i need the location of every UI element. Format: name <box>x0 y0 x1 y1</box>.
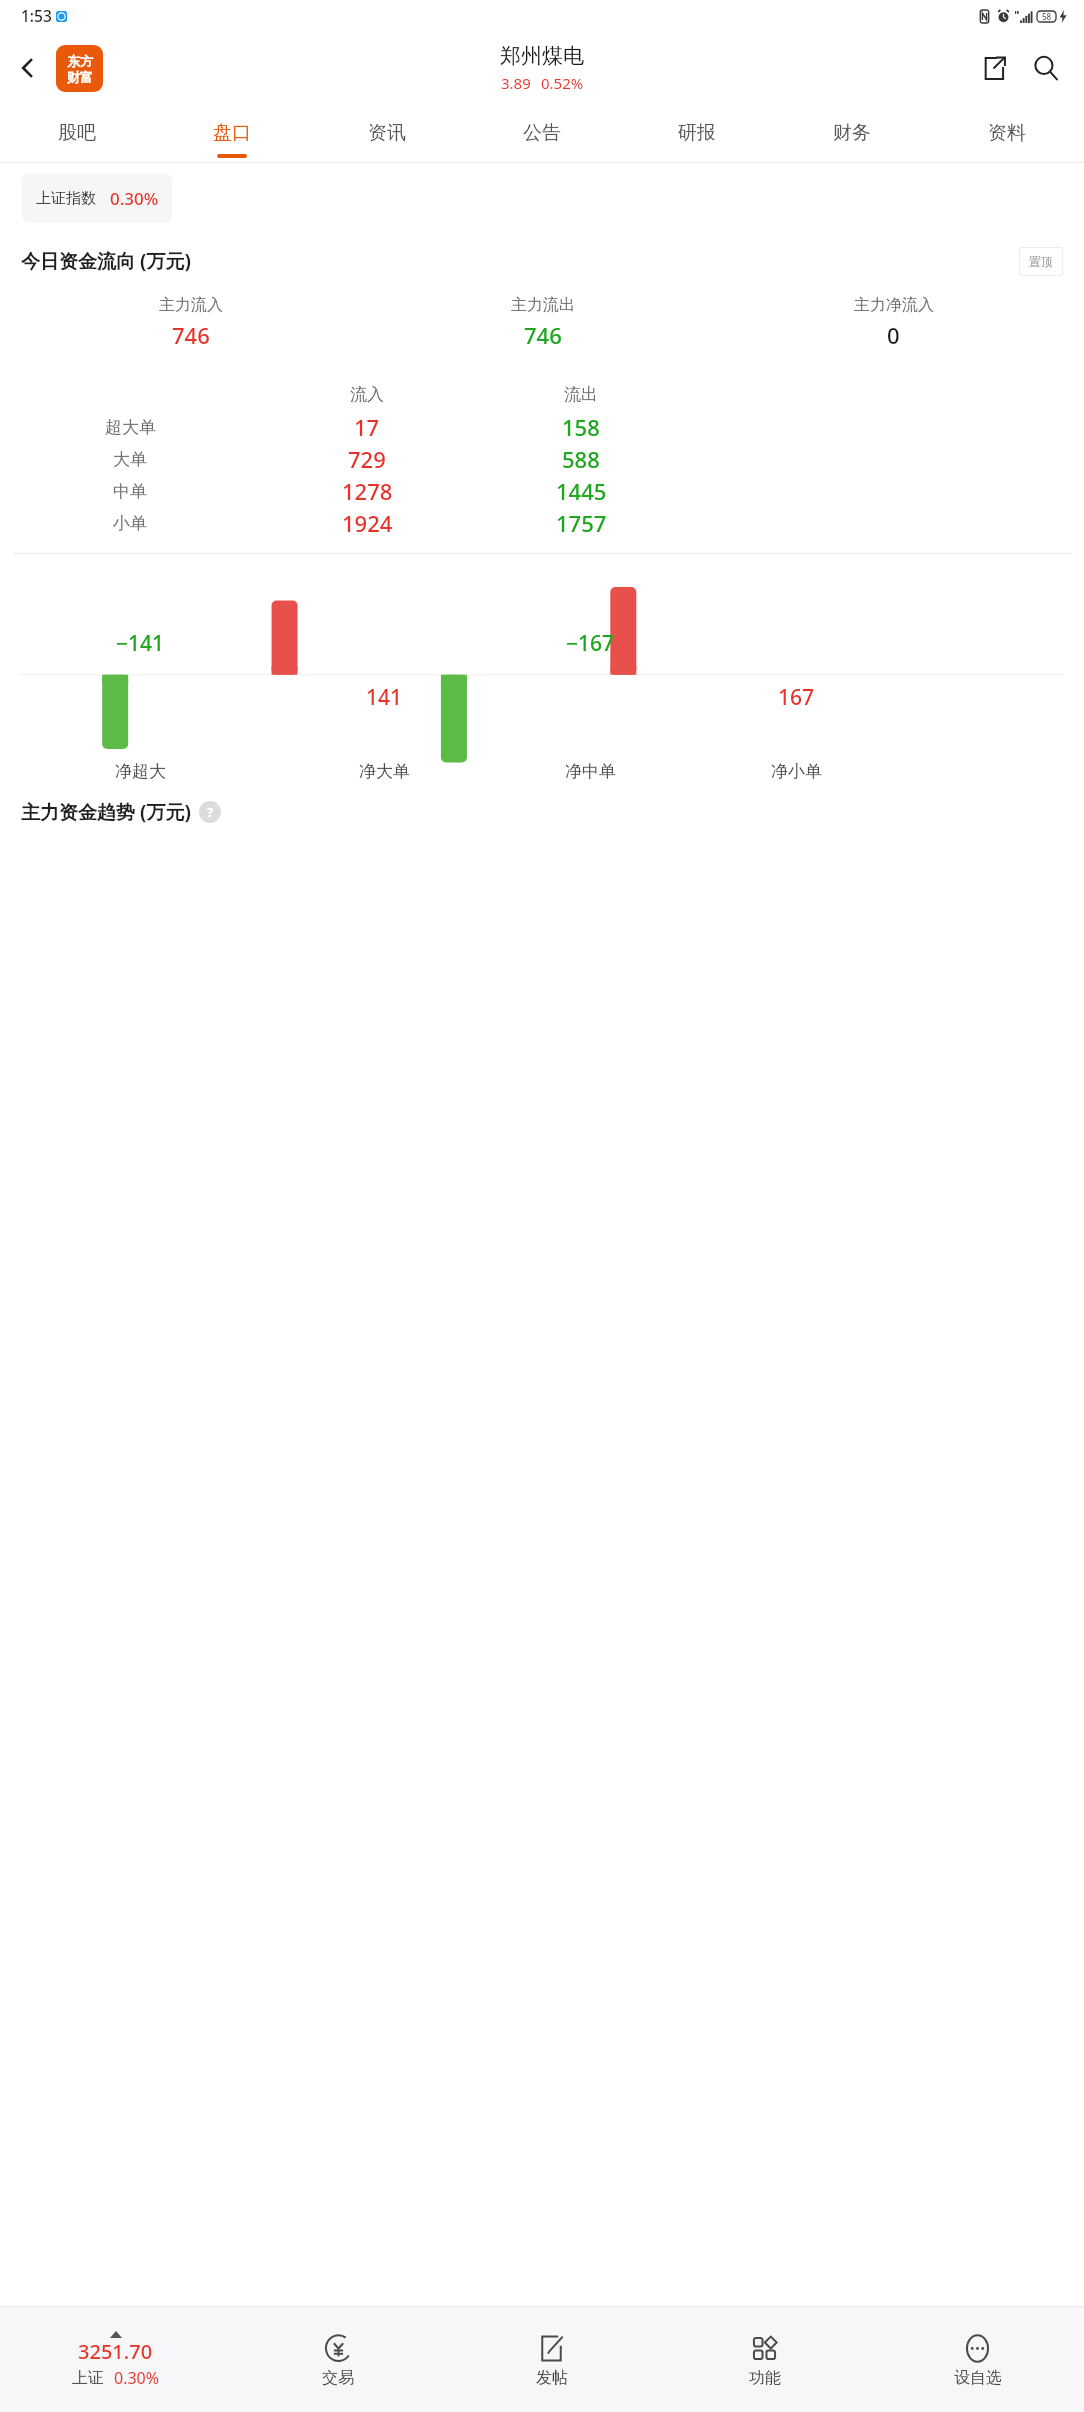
button[interactable]: 发帖 <box>445 2332 658 2388</box>
staticText: 主力净流入 <box>854 295 934 315</box>
button[interactable]: 主力流入 <box>15 289 1069 355</box>
button[interactable]: 公告 <box>464 104 619 162</box>
staticText: 交易 <box>322 2368 354 2388</box>
staticText: 主力资金趋势 (万元) <box>21 799 191 825</box>
staticText: 大单 <box>113 449 147 470</box>
staticText: 超大单 <box>105 417 156 438</box>
staticText: 小单 <box>113 513 147 534</box>
staticText: 净超大 <box>115 761 166 782</box>
button[interactable]: 资料 <box>929 104 1084 162</box>
button[interactable]: 中单 <box>0 475 1084 507</box>
staticText: 主力流出 <box>511 295 575 315</box>
staticText: 净小单 <box>771 761 822 782</box>
staticText: 股吧 <box>58 121 96 145</box>
staticText: 746 <box>172 320 210 350</box>
staticText: 3251.70 <box>78 2338 153 2365</box>
staticText: 郑州煤电 <box>500 43 584 69</box>
button[interactable]: 置顶 <box>1019 247 1063 276</box>
staticText: 资讯 <box>368 121 406 145</box>
staticText: 167 <box>778 683 815 712</box>
staticText: 中单 <box>113 481 147 502</box>
staticText: 上证 <box>72 2368 104 2388</box>
button[interactable]: 研报 <box>619 104 774 162</box>
button[interactable]: 3251.70 <box>0 2331 231 2389</box>
staticText: 财务 <box>833 121 871 145</box>
button[interactable]: 大单 <box>0 443 1084 475</box>
button[interactable]: 设自选 <box>871 2332 1084 2388</box>
staticText: 58 <box>1042 11 1052 22</box>
staticText: 净中单 <box>565 761 616 782</box>
staticText: 588 <box>562 444 600 474</box>
staticText: 财富 <box>67 69 93 85</box>
staticText: 研报 <box>678 121 716 145</box>
button[interactable]: Share <box>968 42 1020 94</box>
button[interactable]: 财务 <box>774 104 929 162</box>
staticText: 设自选 <box>954 2368 1002 2388</box>
staticText: 1757 <box>556 508 607 538</box>
staticText: 141 <box>366 683 403 712</box>
staticText: 发帖 <box>536 2368 568 2388</box>
staticText: 17 <box>354 412 380 442</box>
staticText: 0 <box>887 320 900 350</box>
button[interactable]: Help <box>199 801 221 823</box>
button[interactable]: 资讯 <box>309 104 464 162</box>
staticText: 净大单 <box>359 761 410 782</box>
staticText: 729 <box>348 444 386 474</box>
button[interactable]: 超大单 <box>0 411 1084 443</box>
staticText: 主力流入 <box>159 295 223 315</box>
staticText: −167 <box>566 629 615 658</box>
staticText: 0.30% <box>110 187 159 210</box>
staticText: 1924 <box>342 508 393 538</box>
staticText: 流出 <box>564 384 598 405</box>
button[interactable]: 交易 <box>231 2332 445 2388</box>
staticText: 0.52% <box>541 73 584 93</box>
staticText: 资料 <box>988 121 1026 145</box>
button[interactable]: Search <box>1020 42 1072 94</box>
staticText: 东方 <box>67 53 93 69</box>
staticText: 158 <box>562 412 600 442</box>
staticText: 置顶 <box>1029 254 1053 269</box>
button[interactable]: 上证指数 <box>22 173 172 223</box>
button[interactable]: Back <box>4 44 52 92</box>
staticText: 盘口 <box>213 121 251 145</box>
button[interactable]: 小单 <box>0 507 1084 539</box>
staticText: ? <box>207 803 214 821</box>
staticText: 1445 <box>556 476 607 506</box>
staticText: 公告 <box>523 121 561 145</box>
staticText: 1:53 <box>21 5 52 26</box>
staticText: 746 <box>524 320 562 350</box>
staticText: 功能 <box>749 2368 781 2388</box>
button[interactable]: 功能 <box>658 2332 871 2388</box>
staticText: 0.30% <box>114 2367 160 2389</box>
staticText: 上证指数 <box>36 189 96 208</box>
button[interactable]: 盘口 <box>154 104 309 162</box>
staticText: 今日资金流向 (万元) <box>21 248 191 274</box>
staticText: 1278 <box>342 476 393 506</box>
staticText: 流入 <box>350 384 384 405</box>
staticText: −141 <box>116 629 165 658</box>
button[interactable]: East Money <box>56 45 103 92</box>
staticText: 3.89 <box>501 73 531 93</box>
button[interactable]: 股吧 <box>0 104 154 162</box>
